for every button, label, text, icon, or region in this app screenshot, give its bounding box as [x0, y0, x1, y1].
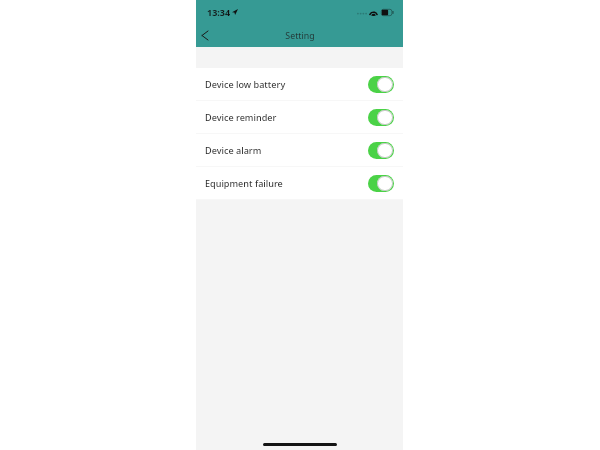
staticText: Device low battery: [205, 78, 286, 90]
staticText: Device alarm: [205, 144, 262, 156]
button[interactable]: Toggle Device reminder: [368, 109, 394, 126]
button[interactable]: Back: [196, 24, 220, 47]
button[interactable]: Toggle Device low battery: [368, 76, 394, 93]
button[interactable]: Device alarm: [196, 134, 403, 166]
button[interactable]: Toggle Device alarm: [368, 142, 394, 159]
staticText: 13:34: [207, 6, 231, 18]
staticText: Device reminder: [205, 111, 277, 123]
button[interactable]: Equipment failure: [196, 167, 403, 199]
button[interactable]: Toggle Equipment failure: [368, 175, 394, 192]
button[interactable]: Device low battery: [196, 68, 403, 100]
staticText: Equipment failure: [205, 177, 283, 189]
staticText: Setting: [285, 30, 315, 42]
button[interactable]: Device reminder: [196, 101, 403, 133]
